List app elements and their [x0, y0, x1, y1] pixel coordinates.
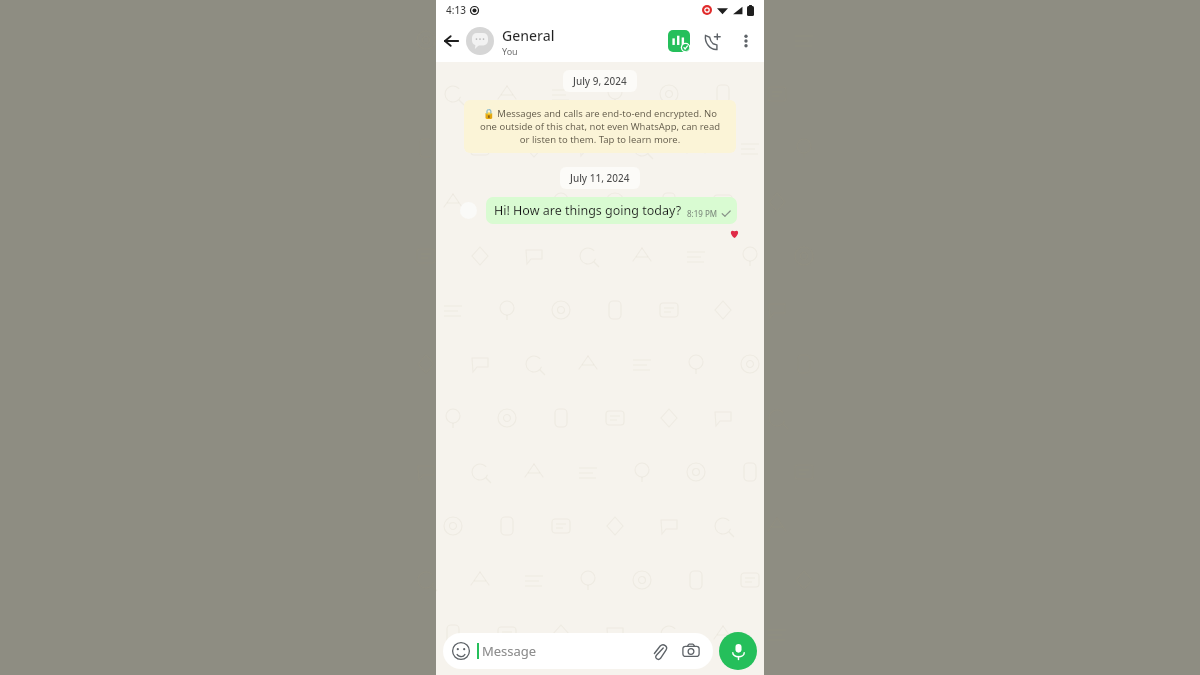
staticText: 🔒 Messages and calls are end-to-end encr…: [474, 107, 726, 146]
button[interactable]: Back: [436, 26, 466, 56]
staticText: July 11, 2024: [570, 171, 630, 185]
button[interactable]: Hi! How are things going today?: [486, 197, 737, 224]
staticText: 8:19 PM: [687, 208, 718, 219]
button[interactable]: July 9, 2024: [563, 70, 637, 92]
button[interactable]: Add call participant: [696, 24, 730, 58]
button[interactable]: More options: [730, 25, 762, 57]
button[interactable]: 🔒 Messages and calls are end-to-end encr…: [464, 100, 736, 153]
staticText: 4:13: [446, 3, 466, 17]
button[interactable]: Record voice message: [719, 632, 757, 670]
staticText: July 9, 2024: [573, 74, 627, 88]
button[interactable]: Camera: [678, 638, 704, 664]
staticText: General: [502, 26, 555, 45]
staticText: Hi! How are things going today?: [494, 202, 682, 219]
button[interactable]: Attach: [646, 638, 672, 664]
button[interactable]: July 11, 2024: [560, 167, 640, 189]
staticText: Message: [482, 642, 537, 660]
button[interactable]: General: [466, 20, 662, 62]
button[interactable]: Message: [443, 633, 713, 669]
staticText: You: [502, 45, 518, 57]
button[interactable]: Business verified: [662, 24, 696, 58]
